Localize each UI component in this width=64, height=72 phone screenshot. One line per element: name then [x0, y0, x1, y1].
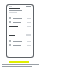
button[interactable] — [9, 17, 31, 19]
button[interactable] — [9, 44, 31, 46]
button[interactable] — [9, 21, 31, 23]
button[interactable] — [9, 40, 31, 42]
